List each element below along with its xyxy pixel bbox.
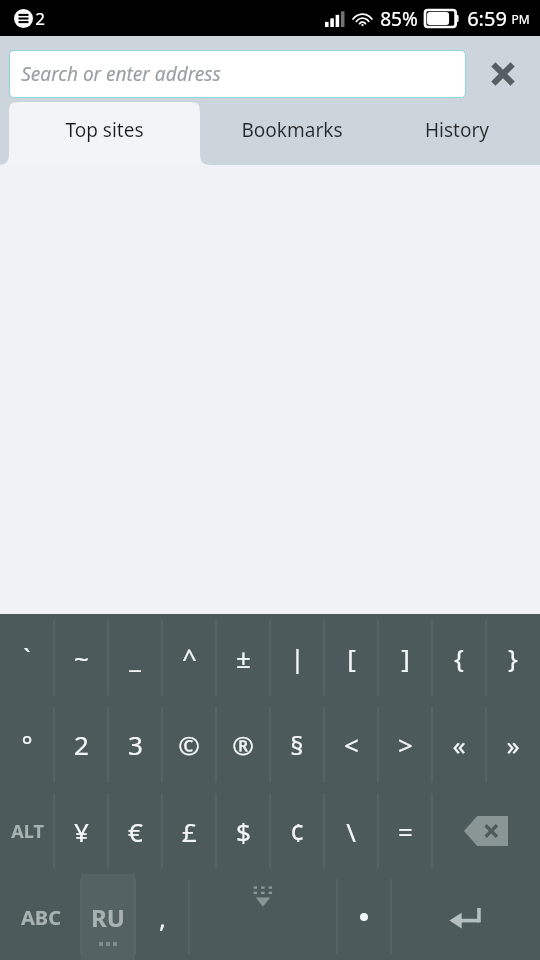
staticText: £ bbox=[182, 814, 197, 849]
staticText: < bbox=[344, 727, 359, 762]
button[interactable]: ALT bbox=[0, 788, 54, 874]
staticText: ABC bbox=[21, 904, 61, 931]
button[interactable]: Backspace bbox=[432, 788, 540, 874]
button[interactable]: > bbox=[378, 701, 432, 788]
staticText: © bbox=[178, 727, 200, 762]
button[interactable]: £ bbox=[162, 788, 216, 874]
button[interactable]: ° bbox=[0, 701, 54, 788]
button[interactable]: ` bbox=[0, 614, 54, 701]
button[interactable]: } bbox=[486, 614, 540, 701]
button[interactable]: § bbox=[270, 701, 324, 788]
staticText: § bbox=[290, 727, 304, 762]
button[interactable]: 3 bbox=[108, 701, 162, 788]
button[interactable]: Top sites bbox=[0, 102, 209, 165]
staticText: , bbox=[159, 900, 166, 935]
staticText: _ bbox=[129, 640, 141, 675]
staticText: PM bbox=[511, 11, 530, 27]
button[interactable]: © bbox=[162, 701, 216, 788]
button[interactable]: RU bbox=[81, 874, 135, 960]
staticText: { bbox=[454, 640, 464, 675]
button[interactable]: Search or enter address bbox=[9, 50, 466, 98]
button[interactable]: ± bbox=[216, 614, 270, 701]
button[interactable]: ¢ bbox=[270, 788, 324, 874]
button[interactable]: History bbox=[374, 102, 540, 165]
staticText: Top sites bbox=[65, 117, 144, 143]
staticText: 6:59 bbox=[467, 5, 507, 32]
staticText: « bbox=[452, 727, 466, 762]
staticText: \ bbox=[346, 814, 356, 849]
staticText: ` bbox=[23, 640, 31, 675]
staticText: = bbox=[398, 814, 413, 849]
button[interactable]: « bbox=[432, 701, 486, 788]
staticText: € bbox=[128, 814, 143, 849]
button[interactable]: Enter bbox=[391, 874, 540, 960]
button[interactable]: Close bbox=[466, 50, 540, 98]
button[interactable]: , bbox=[135, 874, 189, 960]
button[interactable]: € bbox=[108, 788, 162, 874]
staticText: ® bbox=[232, 727, 254, 762]
staticText: Search or enter address bbox=[21, 61, 221, 87]
button[interactable]: Space bbox=[189, 874, 337, 960]
staticText: 85% bbox=[380, 6, 418, 32]
button[interactable]: ^ bbox=[162, 614, 216, 701]
staticText: ] bbox=[401, 640, 410, 675]
staticText: RU bbox=[91, 901, 125, 934]
button[interactable]: Bookmarks bbox=[209, 102, 374, 165]
button[interactable]: ® bbox=[216, 701, 270, 788]
button[interactable]: | bbox=[270, 614, 324, 701]
staticText: ^ bbox=[182, 640, 197, 675]
button[interactable]: 2 bbox=[54, 701, 108, 788]
button[interactable]: ~ bbox=[54, 614, 108, 701]
staticText: 2 bbox=[35, 7, 45, 30]
staticText: | bbox=[290, 640, 305, 675]
staticText: 2 bbox=[74, 727, 89, 762]
button[interactable]: » bbox=[486, 701, 540, 788]
staticText: History bbox=[425, 117, 489, 143]
staticText: $ bbox=[236, 814, 251, 849]
staticText: ± bbox=[236, 640, 251, 675]
staticText: [ bbox=[347, 640, 356, 675]
staticText: ¥ bbox=[74, 814, 89, 849]
button[interactable]: ABC bbox=[0, 874, 81, 960]
button[interactable]: _ bbox=[108, 614, 162, 701]
button[interactable]: ] bbox=[378, 614, 432, 701]
button[interactable]: $ bbox=[216, 788, 270, 874]
staticText: ¢ bbox=[290, 814, 305, 849]
staticText: » bbox=[506, 727, 520, 762]
staticText: ~ bbox=[74, 640, 89, 675]
staticText: 3 bbox=[128, 727, 143, 762]
staticText: > bbox=[398, 727, 413, 762]
button[interactable] bbox=[337, 874, 391, 960]
button[interactable]: [ bbox=[324, 614, 378, 701]
button[interactable]: = bbox=[378, 788, 432, 874]
button[interactable]: < bbox=[324, 701, 378, 788]
staticText: Bookmarks bbox=[241, 117, 343, 143]
button[interactable]: ¥ bbox=[54, 788, 108, 874]
staticText: ° bbox=[21, 727, 33, 762]
button[interactable]: \ bbox=[324, 788, 378, 874]
staticText: } bbox=[508, 640, 518, 675]
button[interactable]: { bbox=[432, 614, 486, 701]
staticText: ALT bbox=[11, 819, 44, 844]
